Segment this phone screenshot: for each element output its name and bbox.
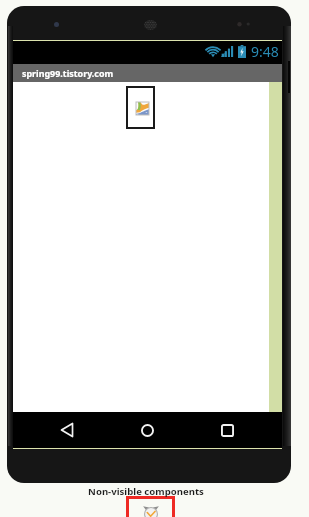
staticText: spring99.tistory.com xyxy=(22,67,114,79)
button[interactable]: Home xyxy=(127,412,167,448)
button[interactable]: Clock component xyxy=(126,496,175,517)
button[interactable]: Back xyxy=(47,412,87,448)
staticText: 9:48 xyxy=(251,42,279,61)
button[interactable]: Recents xyxy=(207,412,247,448)
staticText: Non-visible components xyxy=(88,485,204,498)
button[interactable]: spring99.tistory.com xyxy=(13,64,282,82)
